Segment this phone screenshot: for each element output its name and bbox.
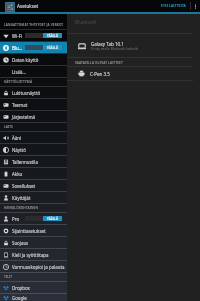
staticText: Lisää… <box>12 69 26 75</box>
button[interactable]: Lisää… <box>0 66 67 77</box>
staticText: Dropbox <box>12 285 30 291</box>
staticText: LANGATTOMAT YHTEYDET JA VERKOT <box>4 23 64 27</box>
button[interactable]: Tallennustila <box>0 156 67 167</box>
staticText: LAITE <box>4 125 14 129</box>
button[interactable]: Sijaintiasetukset <box>0 225 67 236</box>
button[interactable]: PÄÄLLÄ <box>25 45 62 50</box>
staticText: Tallennustila <box>12 159 38 165</box>
button[interactable]: Dropbox <box>0 282 67 293</box>
staticText: Teemat <box>12 102 28 108</box>
staticText: SAATAVILLA OLEVAT LAITTEET <box>75 61 123 65</box>
button[interactable]: C-Pen 3.5 <box>67 67 200 80</box>
staticText: Wi-Fi <box>12 33 23 39</box>
staticText: PÄÄLLÄ <box>47 46 58 50</box>
button[interactable]: Teemat <box>0 99 67 110</box>
button[interactable]: Galaxy Tab 10.1 <box>67 34 200 57</box>
button[interactable]: Kieli ja syöttötapa <box>0 249 67 260</box>
staticText: Akku <box>12 171 23 177</box>
button[interactable]: Pro <box>0 213 67 224</box>
staticText: Suojaus <box>12 240 29 246</box>
button[interactable]: ETSI LAITTEITA <box>159 2 188 10</box>
staticText: ETSI LAITTEITA <box>161 4 186 8</box>
staticText: PÄÄLLÄ <box>47 34 58 38</box>
button[interactable]: Lukitusnäyttö <box>0 87 67 98</box>
staticText: Asetukset <box>17 3 39 9</box>
staticText: PÄÄLLÄ <box>47 217 58 221</box>
button[interactable]: Suojaus <box>0 237 67 248</box>
button[interactable]: Blu… <box>0 42 67 53</box>
staticText: Bluetooth <box>75 19 97 25</box>
staticText: Sovellukset <box>12 183 36 189</box>
staticText: Käyttäjät <box>12 195 31 201</box>
staticText: Järjestelmä <box>12 114 35 120</box>
staticText: Datan käyttö <box>12 57 39 63</box>
button[interactable]: Sovellukset <box>0 180 67 191</box>
button[interactable]: Datan käyttö <box>0 54 67 65</box>
staticText: Kieli ja syöttötapa <box>12 252 49 258</box>
button[interactable]: PÄÄLLÄ <box>25 216 62 221</box>
button[interactable]: Ääni <box>0 132 67 143</box>
button[interactable]: Käyttäjät <box>0 192 67 203</box>
staticText: Näyttö <box>12 147 26 153</box>
staticText: C-Pen 3.5 <box>90 71 110 77</box>
staticText: Lukitusnäyttö <box>12 90 41 96</box>
button[interactable]: More options <box>191 0 199 12</box>
button[interactable]: Akku <box>0 168 67 179</box>
button[interactable]: Näyttö <box>0 144 67 155</box>
staticText: Ei näy muille Bluetooth-laitteille <box>91 47 139 51</box>
staticText: Google <box>12 295 27 301</box>
button[interactable]: PÄÄLLÄ <box>25 33 62 38</box>
staticText: Galaxy Tab 10.1 <box>91 41 124 47</box>
button[interactable]: Wi-Fi <box>0 30 67 41</box>
button[interactable]: Järjestelmä <box>0 111 67 122</box>
staticText: HENKILÖKOHTAINEN <box>4 206 39 210</box>
staticText: TILIT <box>4 275 13 279</box>
staticText: KÄYTTÖLIITTYMÄ <box>4 80 33 84</box>
staticText: Ääni <box>12 135 22 141</box>
staticText: Sijaintiasetukset <box>12 228 46 234</box>
button[interactable]: Google <box>0 294 67 301</box>
staticText: Pro <box>12 216 20 222</box>
button[interactable]: Settings <box>4 1 15 12</box>
staticText: Blu… <box>12 45 23 51</box>
staticText: Varmuuskopioi ja palauta <box>12 264 65 270</box>
button[interactable]: Varmuuskopioi ja palauta <box>0 261 67 272</box>
